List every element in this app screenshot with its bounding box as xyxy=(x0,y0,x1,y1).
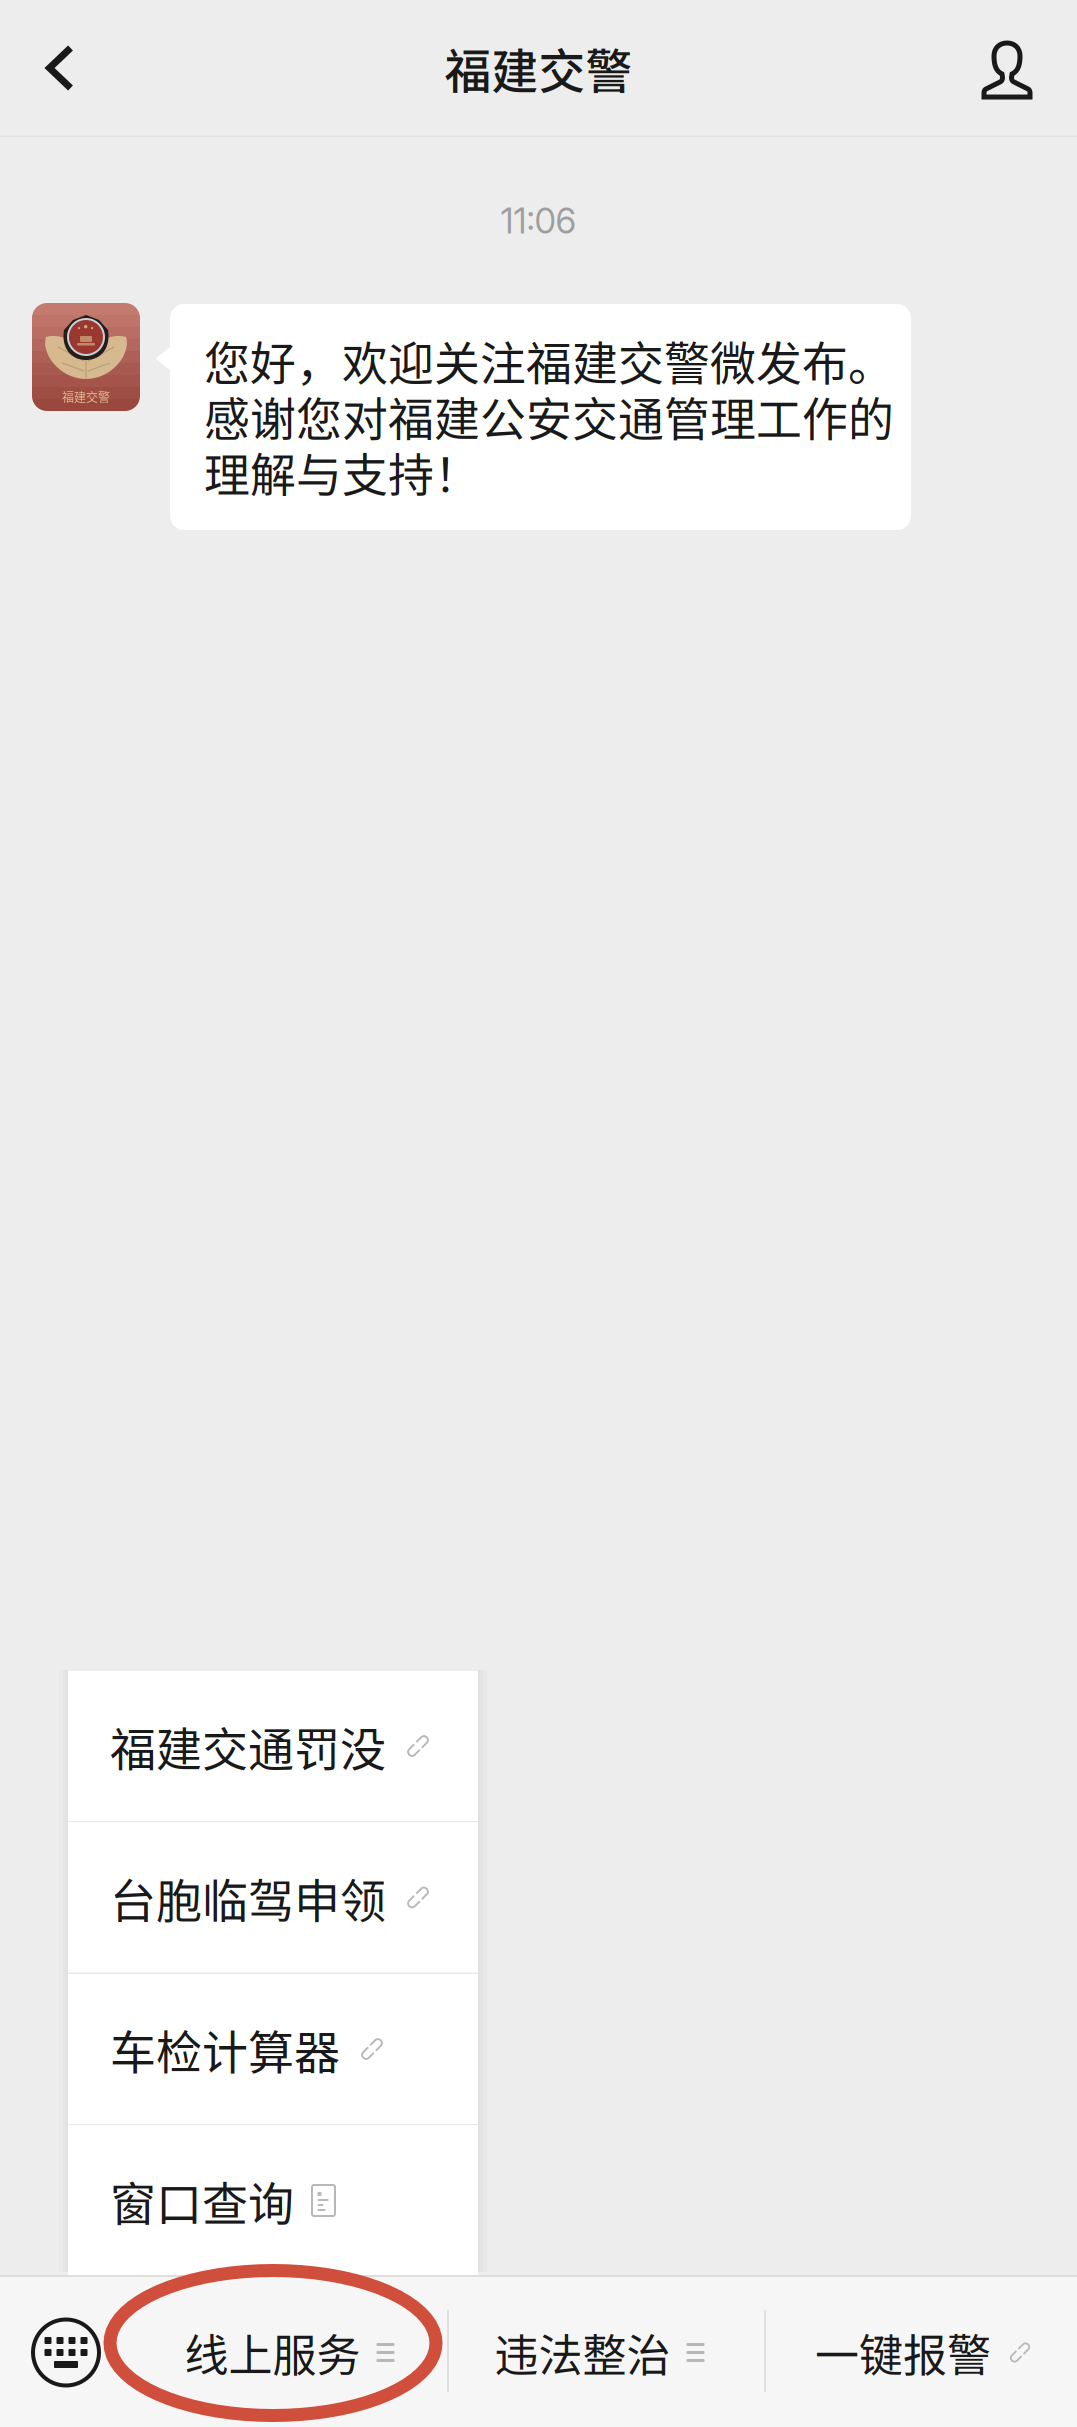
staticText: 一键报警 xyxy=(815,2321,991,2384)
button[interactable]: 线上服务 xyxy=(131,2277,448,2427)
staticText: 福建交警 xyxy=(62,388,110,405)
button[interactable]: 福建交通罚没 xyxy=(68,1671,478,1821)
staticText: 福建交警 xyxy=(444,34,632,102)
button[interactable]: Keyboard xyxy=(0,2277,132,2427)
staticText: 窗口查询 xyxy=(110,2167,294,2234)
staticText: 线上服务 xyxy=(184,2321,360,2384)
button[interactable]: 一键报警 xyxy=(768,2277,1077,2427)
staticText: 车检计算器 xyxy=(110,2016,340,2082)
button[interactable]: Back xyxy=(0,0,120,136)
staticText: 台胞临驾申领 xyxy=(110,1864,386,1931)
staticText: 违法整治 xyxy=(494,2321,670,2384)
button[interactable]: Contact profile xyxy=(937,0,1077,136)
staticText: 11:06 xyxy=(500,200,576,242)
button[interactable]: 车检计算器 xyxy=(68,1974,478,2124)
button[interactable]: 违法整治 xyxy=(441,2277,758,2427)
button[interactable]: 窗口查询 xyxy=(68,2125,478,2275)
staticText: 您好，欢迎关注福建交警微发布。感谢您对福建公安交通管理工作的理解与支持！ xyxy=(204,332,894,499)
staticText: 福建交通罚没 xyxy=(110,1713,386,1779)
button[interactable]: 台胞临驾申领 xyxy=(68,1822,478,1972)
